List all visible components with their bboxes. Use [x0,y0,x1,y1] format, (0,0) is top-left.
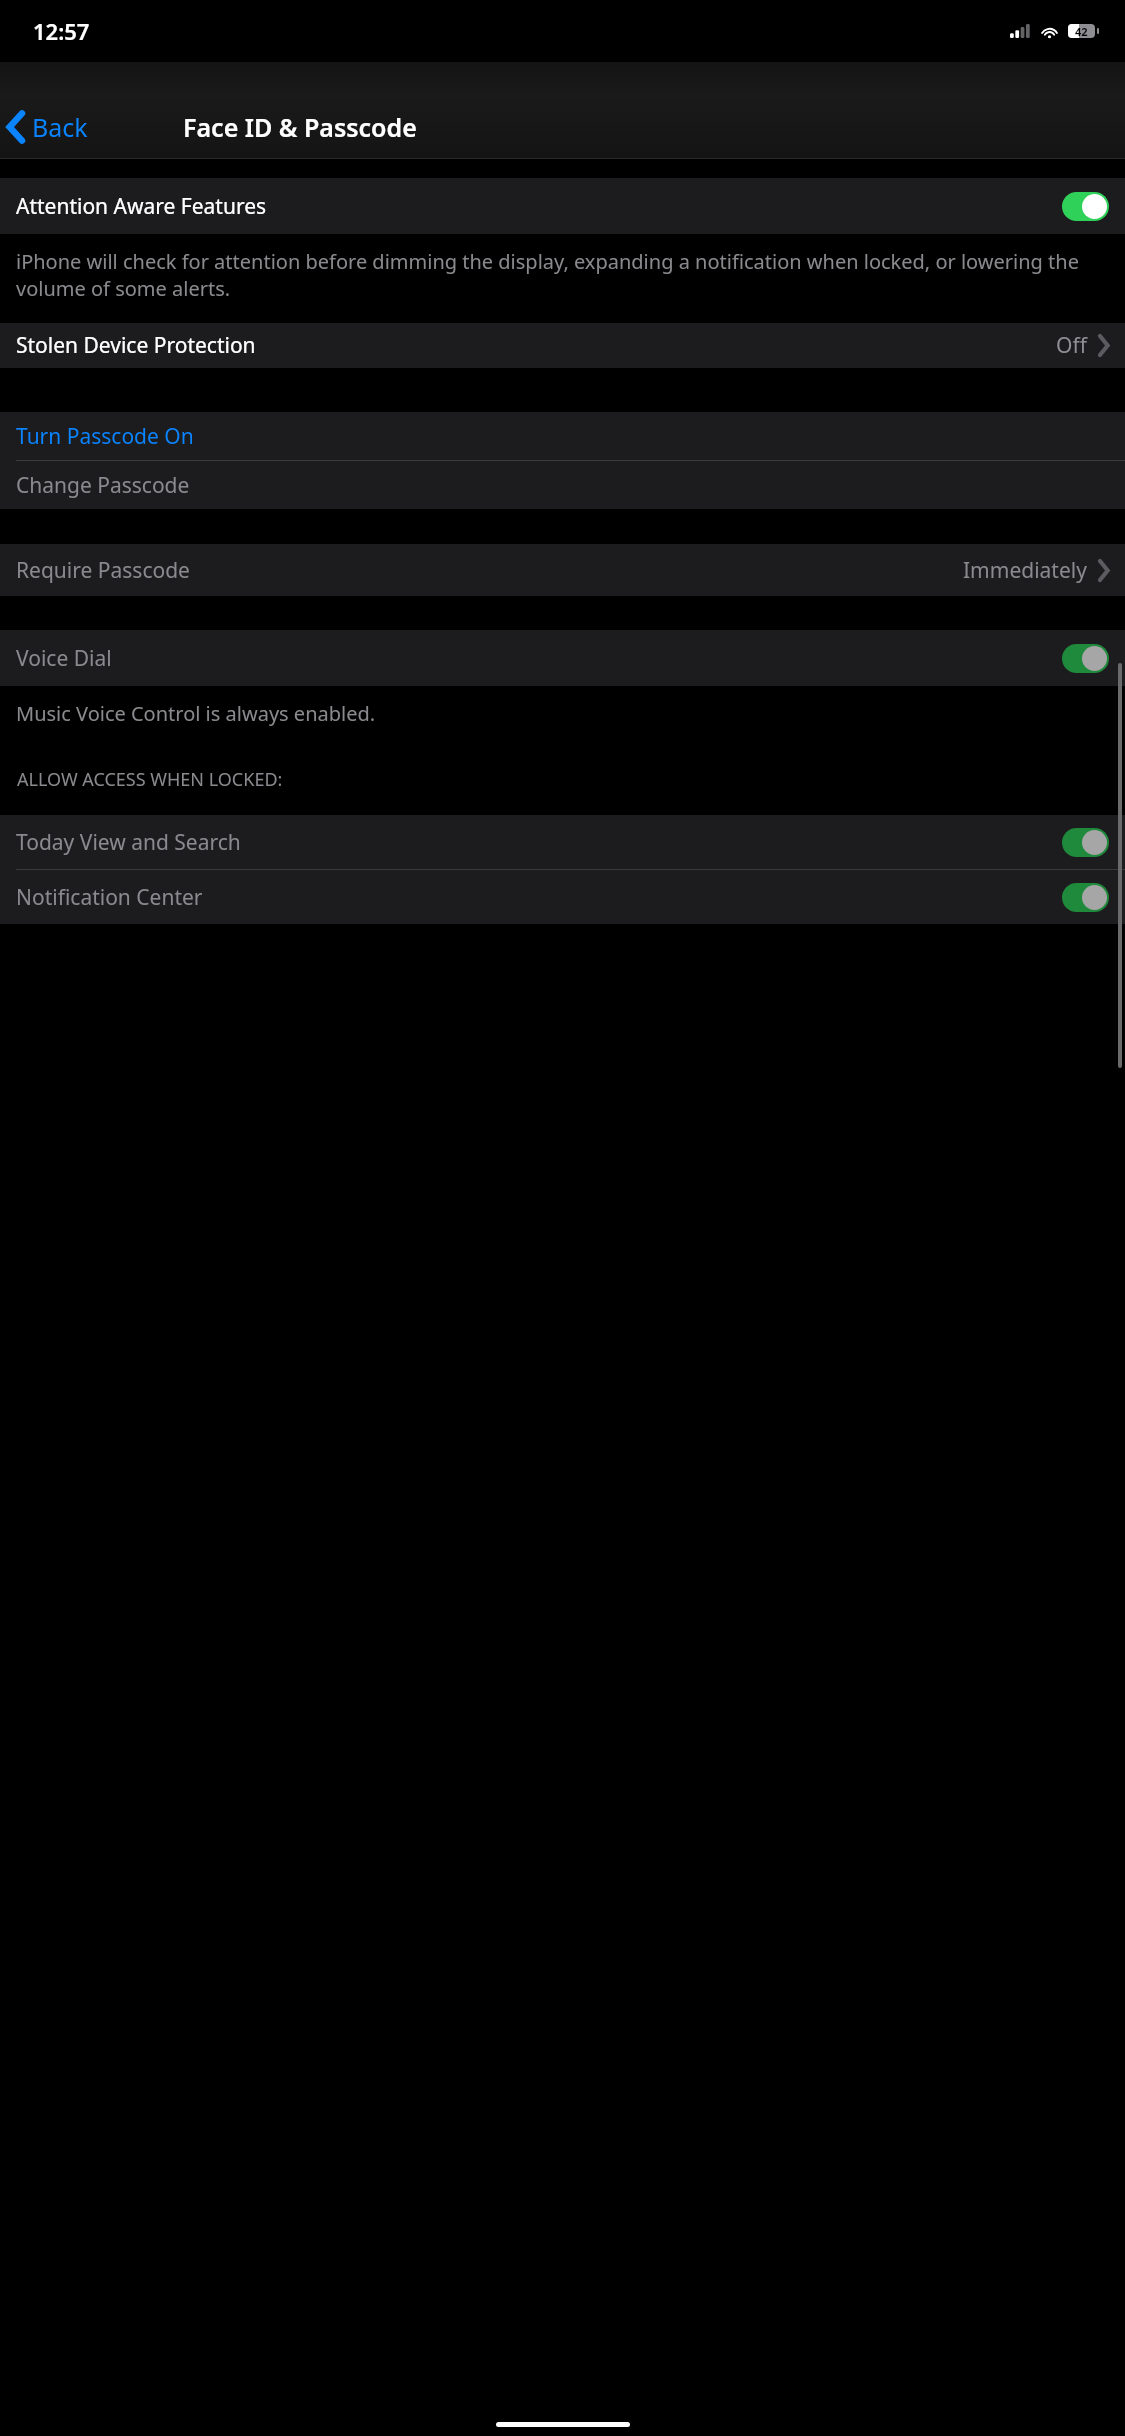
button[interactable]: Change Passcode [0,461,1125,509]
button[interactable]: Toggle [1062,192,1109,221]
staticText: 12:57 [33,16,90,46]
button[interactable]: Back [0,106,98,148]
staticText: Music Voice Control is always enabled. [16,700,376,727]
staticText: Turn Passcode On [16,422,194,451]
staticText: Immediately [963,556,1087,585]
staticText: 42 [1075,24,1088,38]
staticText: Voice Dial [16,644,112,673]
button[interactable]: Today View and Search [0,815,1125,869]
staticText: Change Passcode [16,471,190,500]
staticText: Stolen Device Protection [16,331,256,360]
staticText: Attention Aware Features [16,192,267,221]
staticText: Notification Center [16,883,203,912]
button[interactable]: Require Passcode [0,544,1125,596]
staticText: iPhone will check for attention before d… [16,248,1109,302]
staticText: Back [32,110,88,144]
staticText: Face ID & Passcode [183,110,417,144]
staticText: ALLOW ACCESS WHEN LOCKED: [17,767,283,792]
button[interactable]: Turn Passcode On [0,412,1125,460]
staticText: Require Passcode [16,556,190,585]
button[interactable]: Attention Aware Features [0,178,1125,234]
button[interactable]: Stolen Device Protection [0,323,1125,368]
staticText: Off [1056,331,1087,360]
button[interactable]: Toggle [1062,883,1109,912]
staticText: Today View and Search [16,828,241,857]
button[interactable]: Notification Center [0,870,1125,924]
button[interactable]: Toggle [1062,828,1109,857]
other: More [1098,336,1109,355]
button[interactable]: Voice Dial [0,630,1125,686]
other: More [1098,561,1109,580]
button[interactable]: Toggle [1062,644,1109,673]
